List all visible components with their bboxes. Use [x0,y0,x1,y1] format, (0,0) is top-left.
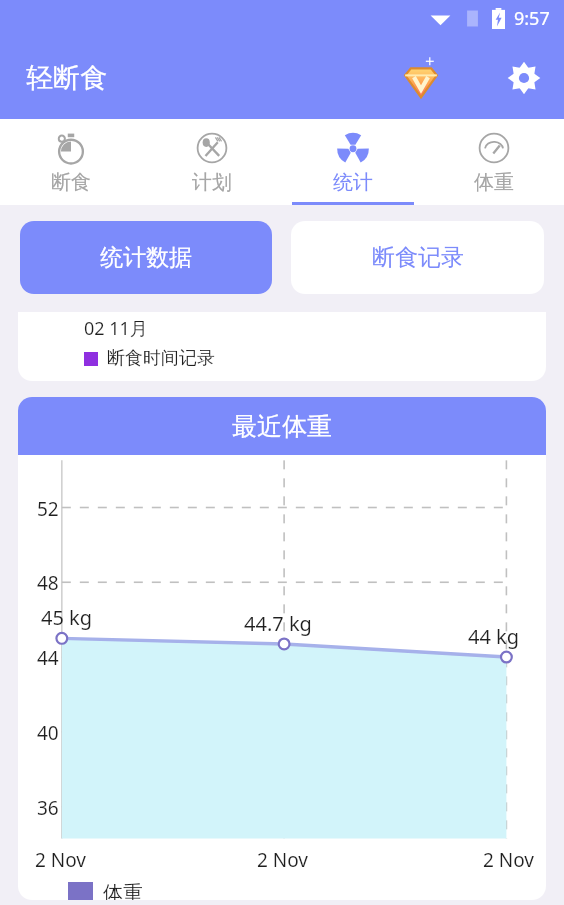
staticText: 断食时间记录 [107,347,215,370]
staticText: 52 [37,496,59,522]
button[interactable]: 统计 [282,119,423,205]
staticText: 统计 [333,170,373,195]
button[interactable]: 断食 [0,119,141,205]
staticText: 体重 [474,170,514,195]
staticText: 44 [37,645,59,671]
staticText: 36 [37,795,59,821]
button[interactable]: Settings [500,54,548,102]
staticText: 2 Nov [483,847,535,873]
staticText: 计划 [192,170,232,195]
staticText: 最近体重 [232,411,332,442]
staticText: 2 Nov [35,847,87,873]
staticText: 9:57 [514,6,550,31]
staticText: 02 11月 [84,316,148,341]
staticText: 2 Nov [257,847,309,873]
staticText: 断食记录 [372,243,464,272]
button[interactable]: 断食记录 [291,221,544,294]
staticText: 44 kg [468,623,520,650]
staticText: 轻断食 [26,61,107,95]
staticText: 断食 [51,170,91,195]
staticText: 统计数据 [100,243,192,272]
button[interactable]: VIP [394,51,448,105]
staticText: 体重 [103,881,143,900]
staticText: 40 [37,720,59,746]
staticText: 44.7 kg [244,610,312,637]
staticText: 48 [37,570,59,596]
button[interactable]: 体重 [423,119,564,205]
button[interactable]: 统计数据 [20,221,272,294]
button[interactable]: 计划 [141,119,282,205]
staticText: 45 kg [41,604,93,631]
